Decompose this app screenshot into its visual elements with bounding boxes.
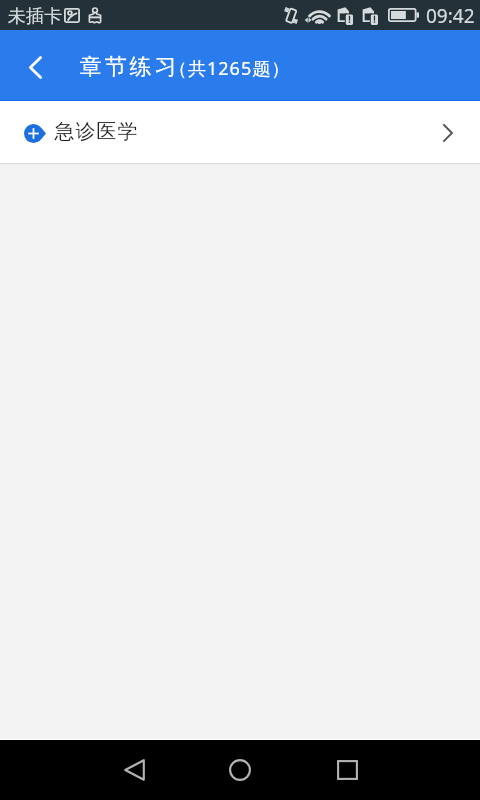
button[interactable]: Back: [0, 30, 64, 101]
staticText: （共1265题）: [169, 56, 291, 81]
button[interactable]: Recent apps: [323, 740, 371, 800]
button[interactable]: Back: [110, 740, 158, 800]
staticText: 09:42: [426, 3, 475, 29]
staticText: 未插卡: [8, 5, 62, 28]
button[interactable]: 急诊医学: [0, 101, 480, 163]
button[interactable]: Home: [216, 740, 264, 800]
staticText: 章节练习: [78, 53, 178, 81]
staticText: 急诊医学: [54, 119, 138, 144]
